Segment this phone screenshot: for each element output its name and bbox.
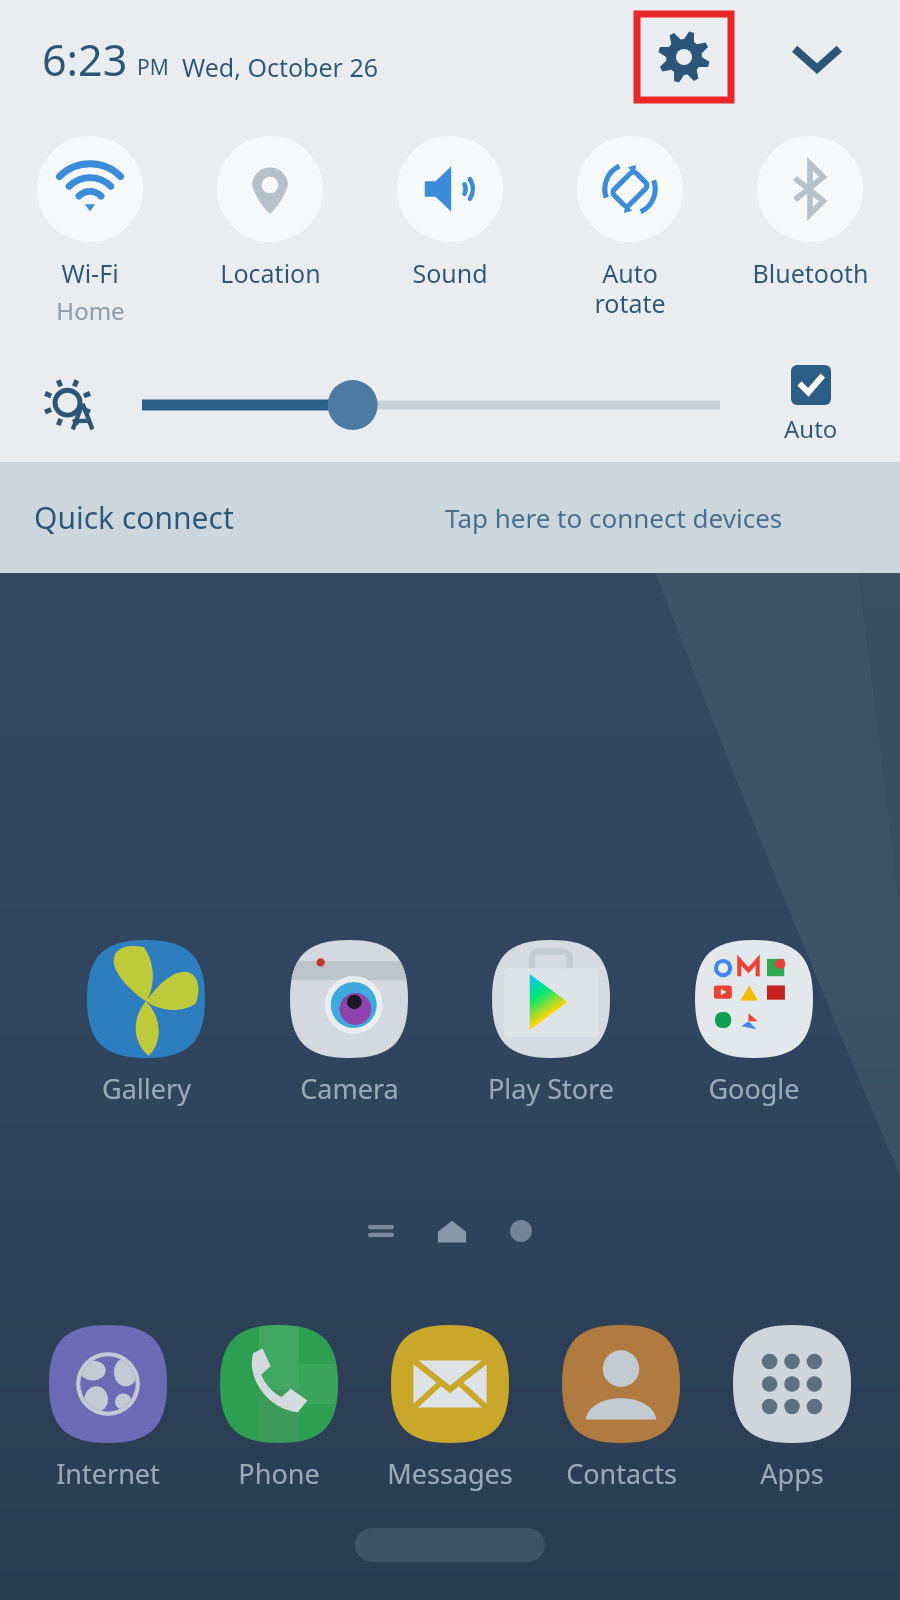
button[interactable]: Brightness slider [130, 370, 740, 440]
staticText: Sound [412, 256, 488, 290]
staticText: Apps [760, 1455, 824, 1492]
button[interactable]: Quick connect [0, 462, 900, 573]
button[interactable]: Page indicator [508, 1218, 534, 1244]
button[interactable]: Expand panel [786, 28, 848, 90]
button[interactable]: Auto [784, 365, 838, 445]
staticText: Phone [238, 1455, 320, 1492]
staticText: Home [56, 294, 125, 327]
button[interactable]: Gallery [71, 940, 221, 1107]
button[interactable]: Messages [375, 1325, 525, 1492]
button[interactable]: Apps [717, 1325, 867, 1492]
staticText: Bluetooth [752, 256, 869, 290]
staticText: Tap here to connect devices [445, 500, 783, 535]
staticText: Auto [784, 412, 838, 445]
button[interactable]: Location [180, 136, 360, 348]
button[interactable]: Home [436, 1215, 468, 1247]
button[interactable]: Wi-Fi [0, 136, 180, 348]
staticText: Google [708, 1070, 800, 1107]
staticText: 6:23 [42, 30, 128, 89]
staticText: Contacts [566, 1455, 677, 1492]
staticText: Play Store [488, 1070, 614, 1107]
button[interactable]: Contacts [546, 1325, 696, 1492]
button[interactable]: Phone [204, 1325, 354, 1492]
button[interactable]: Internet [33, 1325, 183, 1492]
staticText: Messages [387, 1455, 513, 1492]
staticText: Wed, October 26 [182, 50, 379, 84]
staticText: Internet [56, 1455, 160, 1492]
staticText: PM [137, 53, 169, 82]
button[interactable]: Google [679, 940, 829, 1107]
button[interactable]: Settings [637, 14, 731, 100]
button[interactable]: Sound [360, 136, 540, 348]
button[interactable]: Recent apps [366, 1216, 396, 1246]
button[interactable]: Auto rotate [540, 136, 720, 348]
button[interactable]: Camera [274, 940, 424, 1107]
staticText: Camera [300, 1070, 399, 1107]
staticText: Quick connect [34, 497, 234, 538]
staticText: Wi-Fi [61, 256, 119, 290]
staticText: Auto rotate [594, 256, 666, 320]
button[interactable]: Play Store [476, 940, 626, 1107]
staticText: Location [220, 256, 321, 290]
button[interactable]: Bluetooth [720, 136, 900, 348]
staticText: Gallery [102, 1070, 191, 1107]
